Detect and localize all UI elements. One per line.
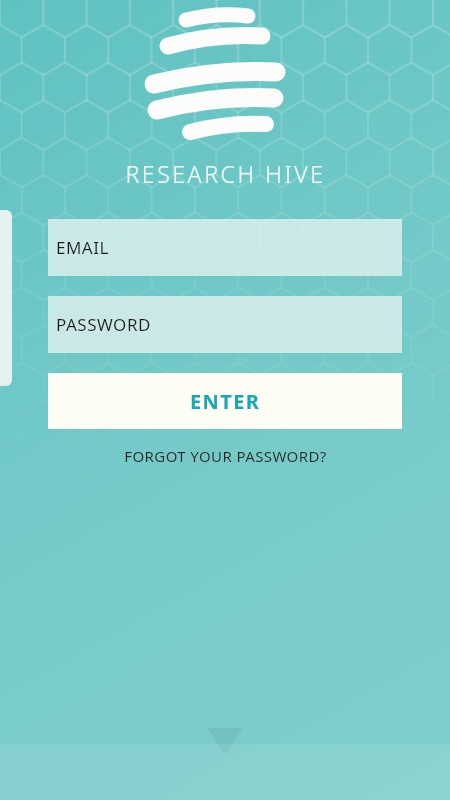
button[interactable]: FORGOT YOUR PASSWORD? [48,441,402,471]
staticText: RESEARCH HIVE [125,158,326,189]
button[interactable]: ENTER [48,373,402,429]
staticText: FORGOT YOUR PASSWORD? [124,446,327,466]
button[interactable]: Open navigation drawer [0,210,12,386]
staticText: ENTER [190,388,261,415]
button[interactable]: PASSWORD [48,296,402,353]
button[interactable]: EMAIL [48,219,402,276]
staticText: EMAIL [56,236,109,259]
staticText: PASSWORD [56,313,151,336]
